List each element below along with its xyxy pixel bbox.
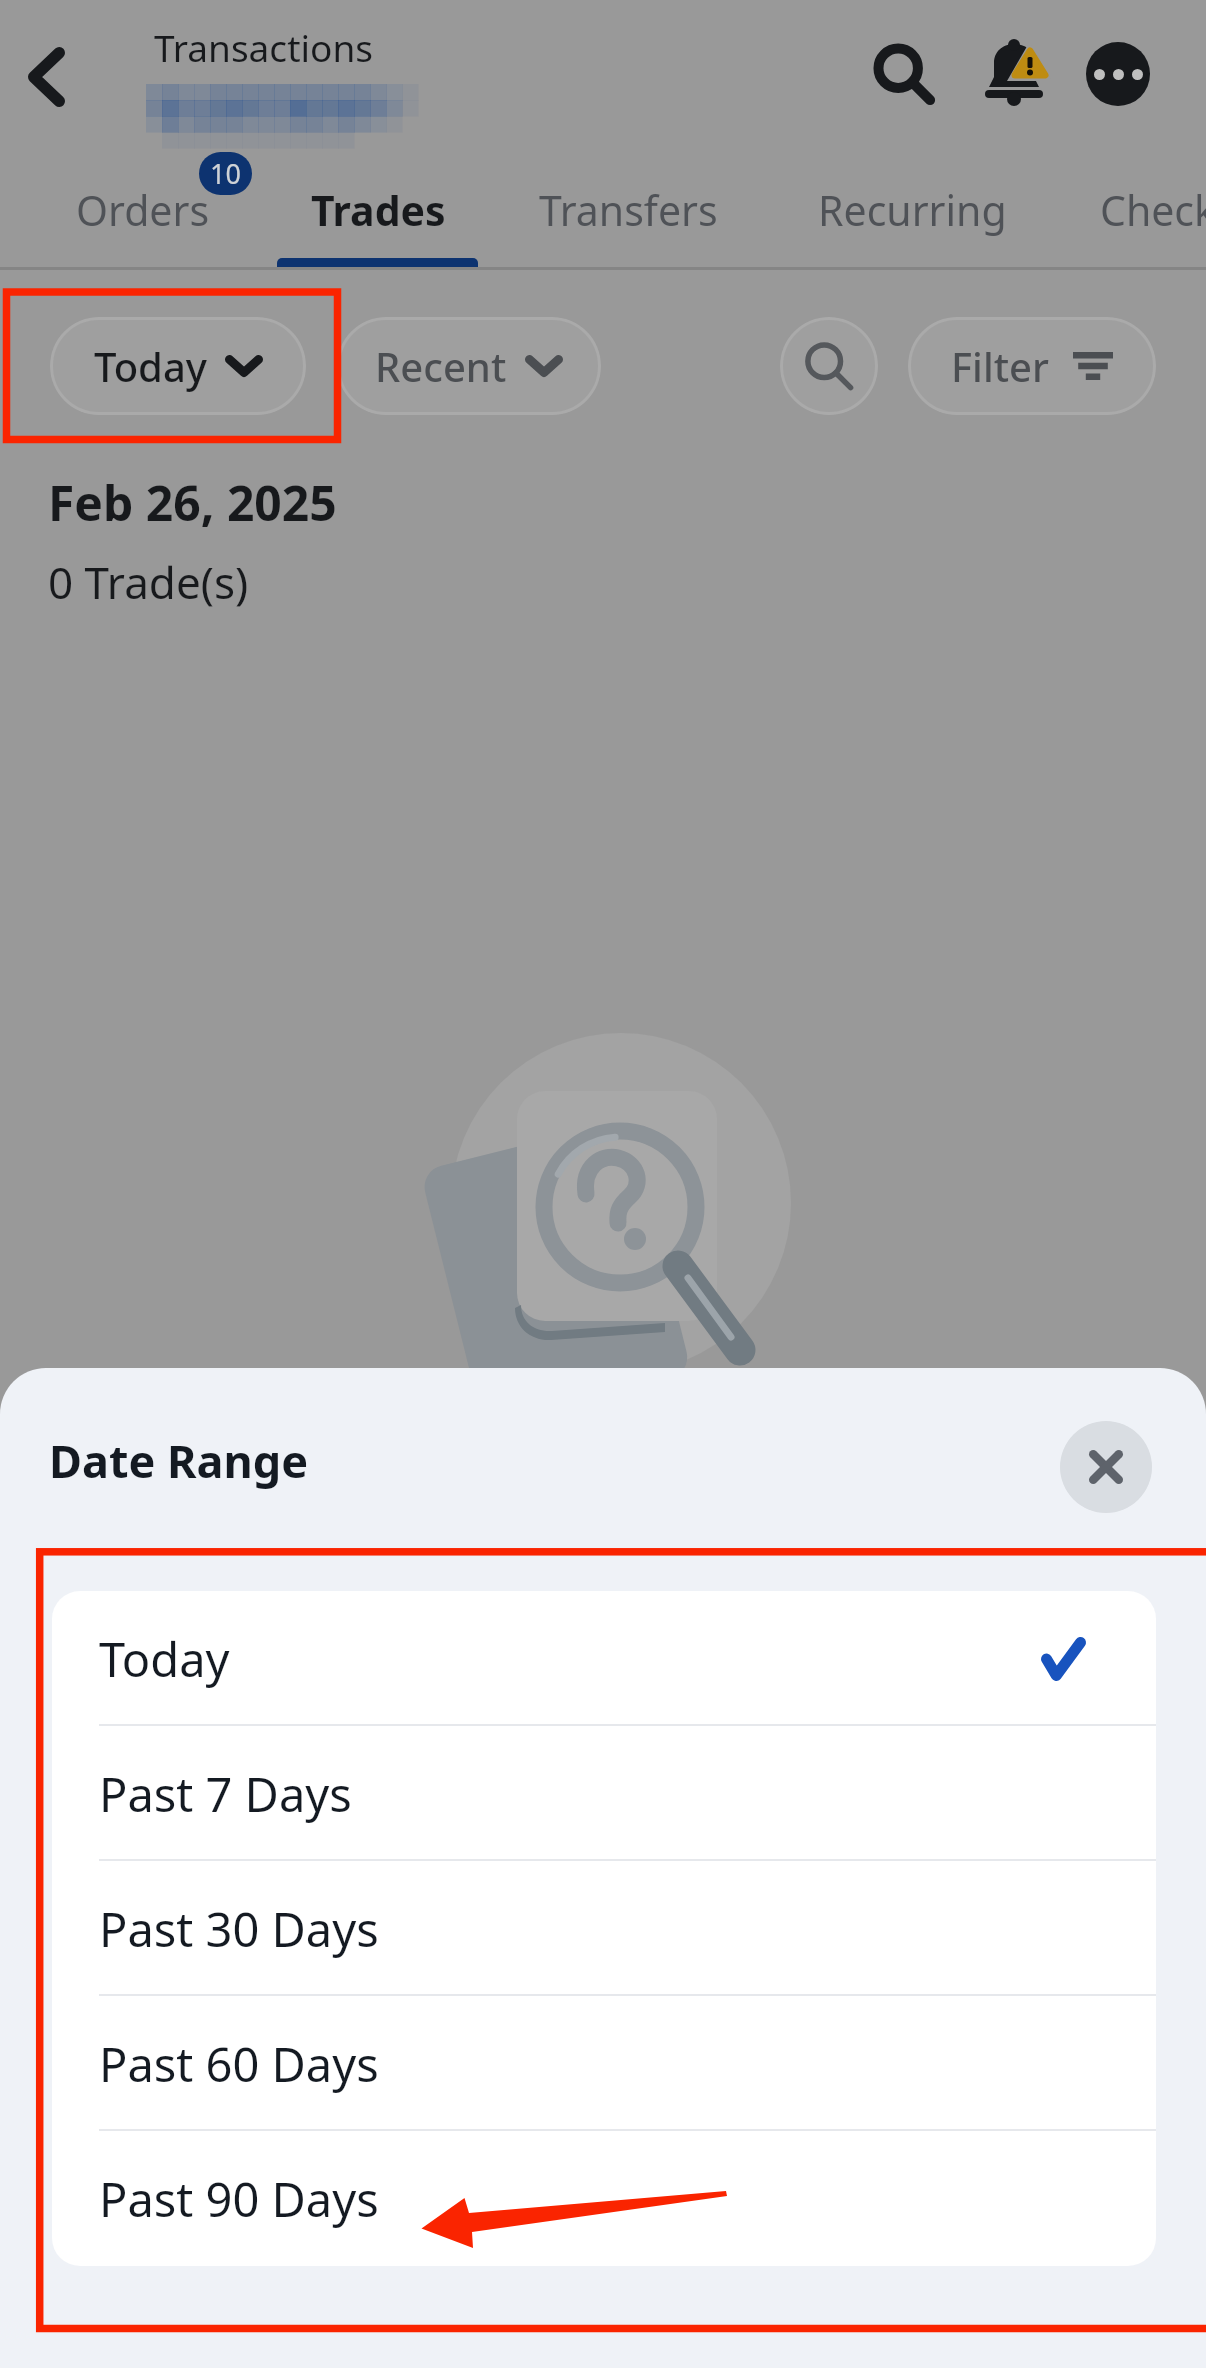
button[interactable]: Search transactions [780,317,878,415]
staticText: Past 60 Days [99,2032,379,2096]
button[interactable]: Search [846,16,962,132]
staticText: 10 [210,155,241,192]
button[interactable]: Past 90 Days [52,2131,1156,2266]
staticText: Recent [375,339,507,393]
button[interactable]: Recurring [780,156,1045,264]
staticText: Today [99,1627,230,1691]
staticText: 0 Trade(s) [48,552,249,612]
button[interactable]: Past 60 Days [52,1996,1156,2131]
staticText: Orders [76,182,210,238]
button[interactable]: Past 30 Days [52,1861,1156,1996]
staticText: Filter [951,339,1049,393]
staticText: Trades [311,182,446,238]
button[interactable]: Past 7 Days [52,1726,1156,1861]
button[interactable]: Notifications [958,16,1074,132]
button[interactable]: Filter [908,317,1156,415]
staticText: Check [1100,182,1206,238]
button[interactable]: Today [50,317,306,415]
button[interactable]: Today [52,1591,1156,1726]
staticText: Past 30 Days [99,1897,379,1961]
button[interactable]: Recent [337,317,601,415]
staticText: Transfers [539,182,718,238]
button[interactable]: More options [1060,16,1176,132]
button[interactable]: Trades [273,156,484,264]
staticText: Recurring [818,182,1007,238]
button[interactable]: Transfers [501,156,756,264]
staticText: Today [94,339,207,393]
staticText: Past 90 Days [99,2167,379,2231]
button[interactable]: Check [1062,156,1206,264]
staticText: Feb 26, 2025 [48,470,337,535]
button[interactable]: Back [0,31,92,123]
button[interactable]: Orders [38,156,248,264]
button[interactable]: Close [1060,1421,1152,1513]
staticText: Past 7 Days [99,1762,352,1826]
staticText: Transactions [154,22,374,72]
staticText: Date Range [49,1430,309,1491]
